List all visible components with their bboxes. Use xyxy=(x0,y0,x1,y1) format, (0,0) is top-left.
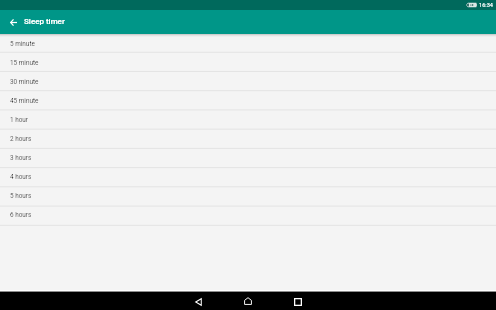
button[interactable]: 30 minute xyxy=(0,71,496,90)
staticText: 3 hours xyxy=(10,154,32,162)
button[interactable]: 5 minute xyxy=(0,33,496,52)
button[interactable]: 45 minute xyxy=(0,90,496,109)
button[interactable]: 3 hours xyxy=(0,147,496,166)
staticText: 4 hours xyxy=(10,173,32,181)
staticText: 1 hour xyxy=(10,116,29,124)
staticText: 16:34 xyxy=(479,2,493,9)
button[interactable]: Navigate up xyxy=(0,10,24,34)
button[interactable]: Recent apps xyxy=(288,291,307,310)
button[interactable]: 6 hours xyxy=(0,204,496,223)
staticText: 30 minute xyxy=(10,78,39,86)
staticText: Sleep timer xyxy=(24,17,65,26)
staticText: 45 minute xyxy=(10,97,39,105)
button[interactable]: 4 hours xyxy=(0,166,496,185)
button[interactable]: 15 minute xyxy=(0,52,496,71)
staticText: 15 minute xyxy=(10,59,39,67)
button[interactable]: Home xyxy=(239,291,258,310)
button[interactable]: Back xyxy=(189,291,208,310)
button[interactable]: 2 hours xyxy=(0,128,496,147)
staticText: 5 minute xyxy=(10,40,35,48)
button[interactable]: 5 hours xyxy=(0,185,496,204)
staticText: 6 hours xyxy=(10,211,32,219)
button[interactable]: 1 hour xyxy=(0,109,496,128)
staticText: 5 hours xyxy=(10,192,32,200)
staticText: 2 hours xyxy=(10,135,32,143)
